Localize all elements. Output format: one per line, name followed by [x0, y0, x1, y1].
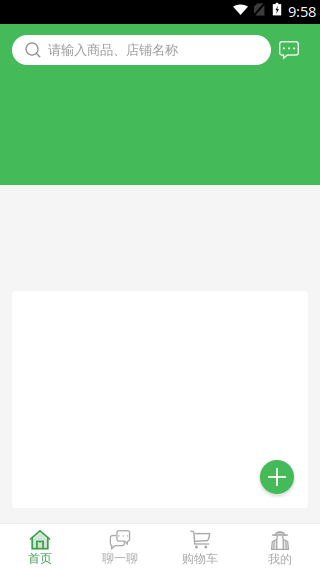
staticText: 9:58: [288, 1, 316, 21]
staticText: 首页: [28, 551, 52, 566]
button[interactable]: Messages: [275, 35, 303, 65]
button[interactable]: 请输入商品、店铺名称: [12, 35, 271, 65]
staticText: 请输入商品、店铺名称: [48, 42, 178, 58]
button[interactable]: 首页: [0, 524, 80, 568]
staticText: 我的: [268, 552, 292, 567]
button[interactable]: 聊一聊: [80, 524, 160, 568]
staticText: 购物车: [182, 551, 218, 566]
button[interactable]: 我的: [240, 524, 320, 568]
button[interactable]: Add: [258, 458, 296, 496]
button[interactable]: 购物车: [160, 524, 240, 568]
staticText: 聊一聊: [102, 551, 138, 565]
